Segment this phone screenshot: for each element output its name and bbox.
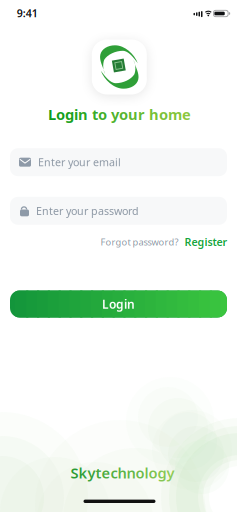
staticText: o: [135, 463, 144, 483]
button[interactable]: Forgot password?: [100, 236, 178, 248]
staticText: n: [78, 105, 88, 124]
staticText: Enter your email: [38, 155, 121, 169]
button[interactable]: Enter your password: [10, 197, 227, 225]
staticText: y: [87, 463, 95, 483]
staticText: Forgot password?: [100, 236, 178, 248]
staticText: k: [78, 463, 87, 483]
staticText: [107, 105, 111, 124]
staticText: o: [56, 105, 65, 124]
staticText: c: [110, 463, 117, 483]
staticText: o: [159, 105, 168, 124]
staticText: Login: [102, 296, 135, 312]
staticText: L: [48, 105, 56, 124]
staticText: Register: [184, 235, 227, 249]
staticText: l: [144, 463, 148, 483]
button[interactable]: Enter your email: [10, 148, 227, 176]
staticText: h: [149, 105, 159, 124]
button[interactable]: Register: [184, 235, 227, 249]
staticText: n: [126, 463, 135, 483]
staticText: y: [166, 463, 174, 483]
staticText: 9:41: [17, 6, 38, 20]
staticText: Enter your password: [36, 204, 139, 218]
staticText: i: [74, 105, 78, 124]
staticText: t: [95, 463, 101, 483]
staticText: e: [182, 105, 191, 124]
staticText: g: [157, 463, 166, 483]
staticText: t: [92, 105, 98, 124]
staticText: m: [168, 105, 182, 124]
staticText: r: [138, 105, 145, 124]
staticText: S: [70, 463, 78, 483]
staticText: o: [148, 463, 157, 483]
staticText: y: [111, 105, 119, 124]
staticText: g: [65, 105, 74, 124]
button[interactable]: Login: [10, 290, 227, 317]
staticText: u: [128, 105, 138, 124]
staticText: e: [101, 463, 110, 483]
staticText: h: [117, 463, 126, 483]
staticText: o: [98, 105, 107, 124]
staticText: o: [119, 105, 128, 124]
